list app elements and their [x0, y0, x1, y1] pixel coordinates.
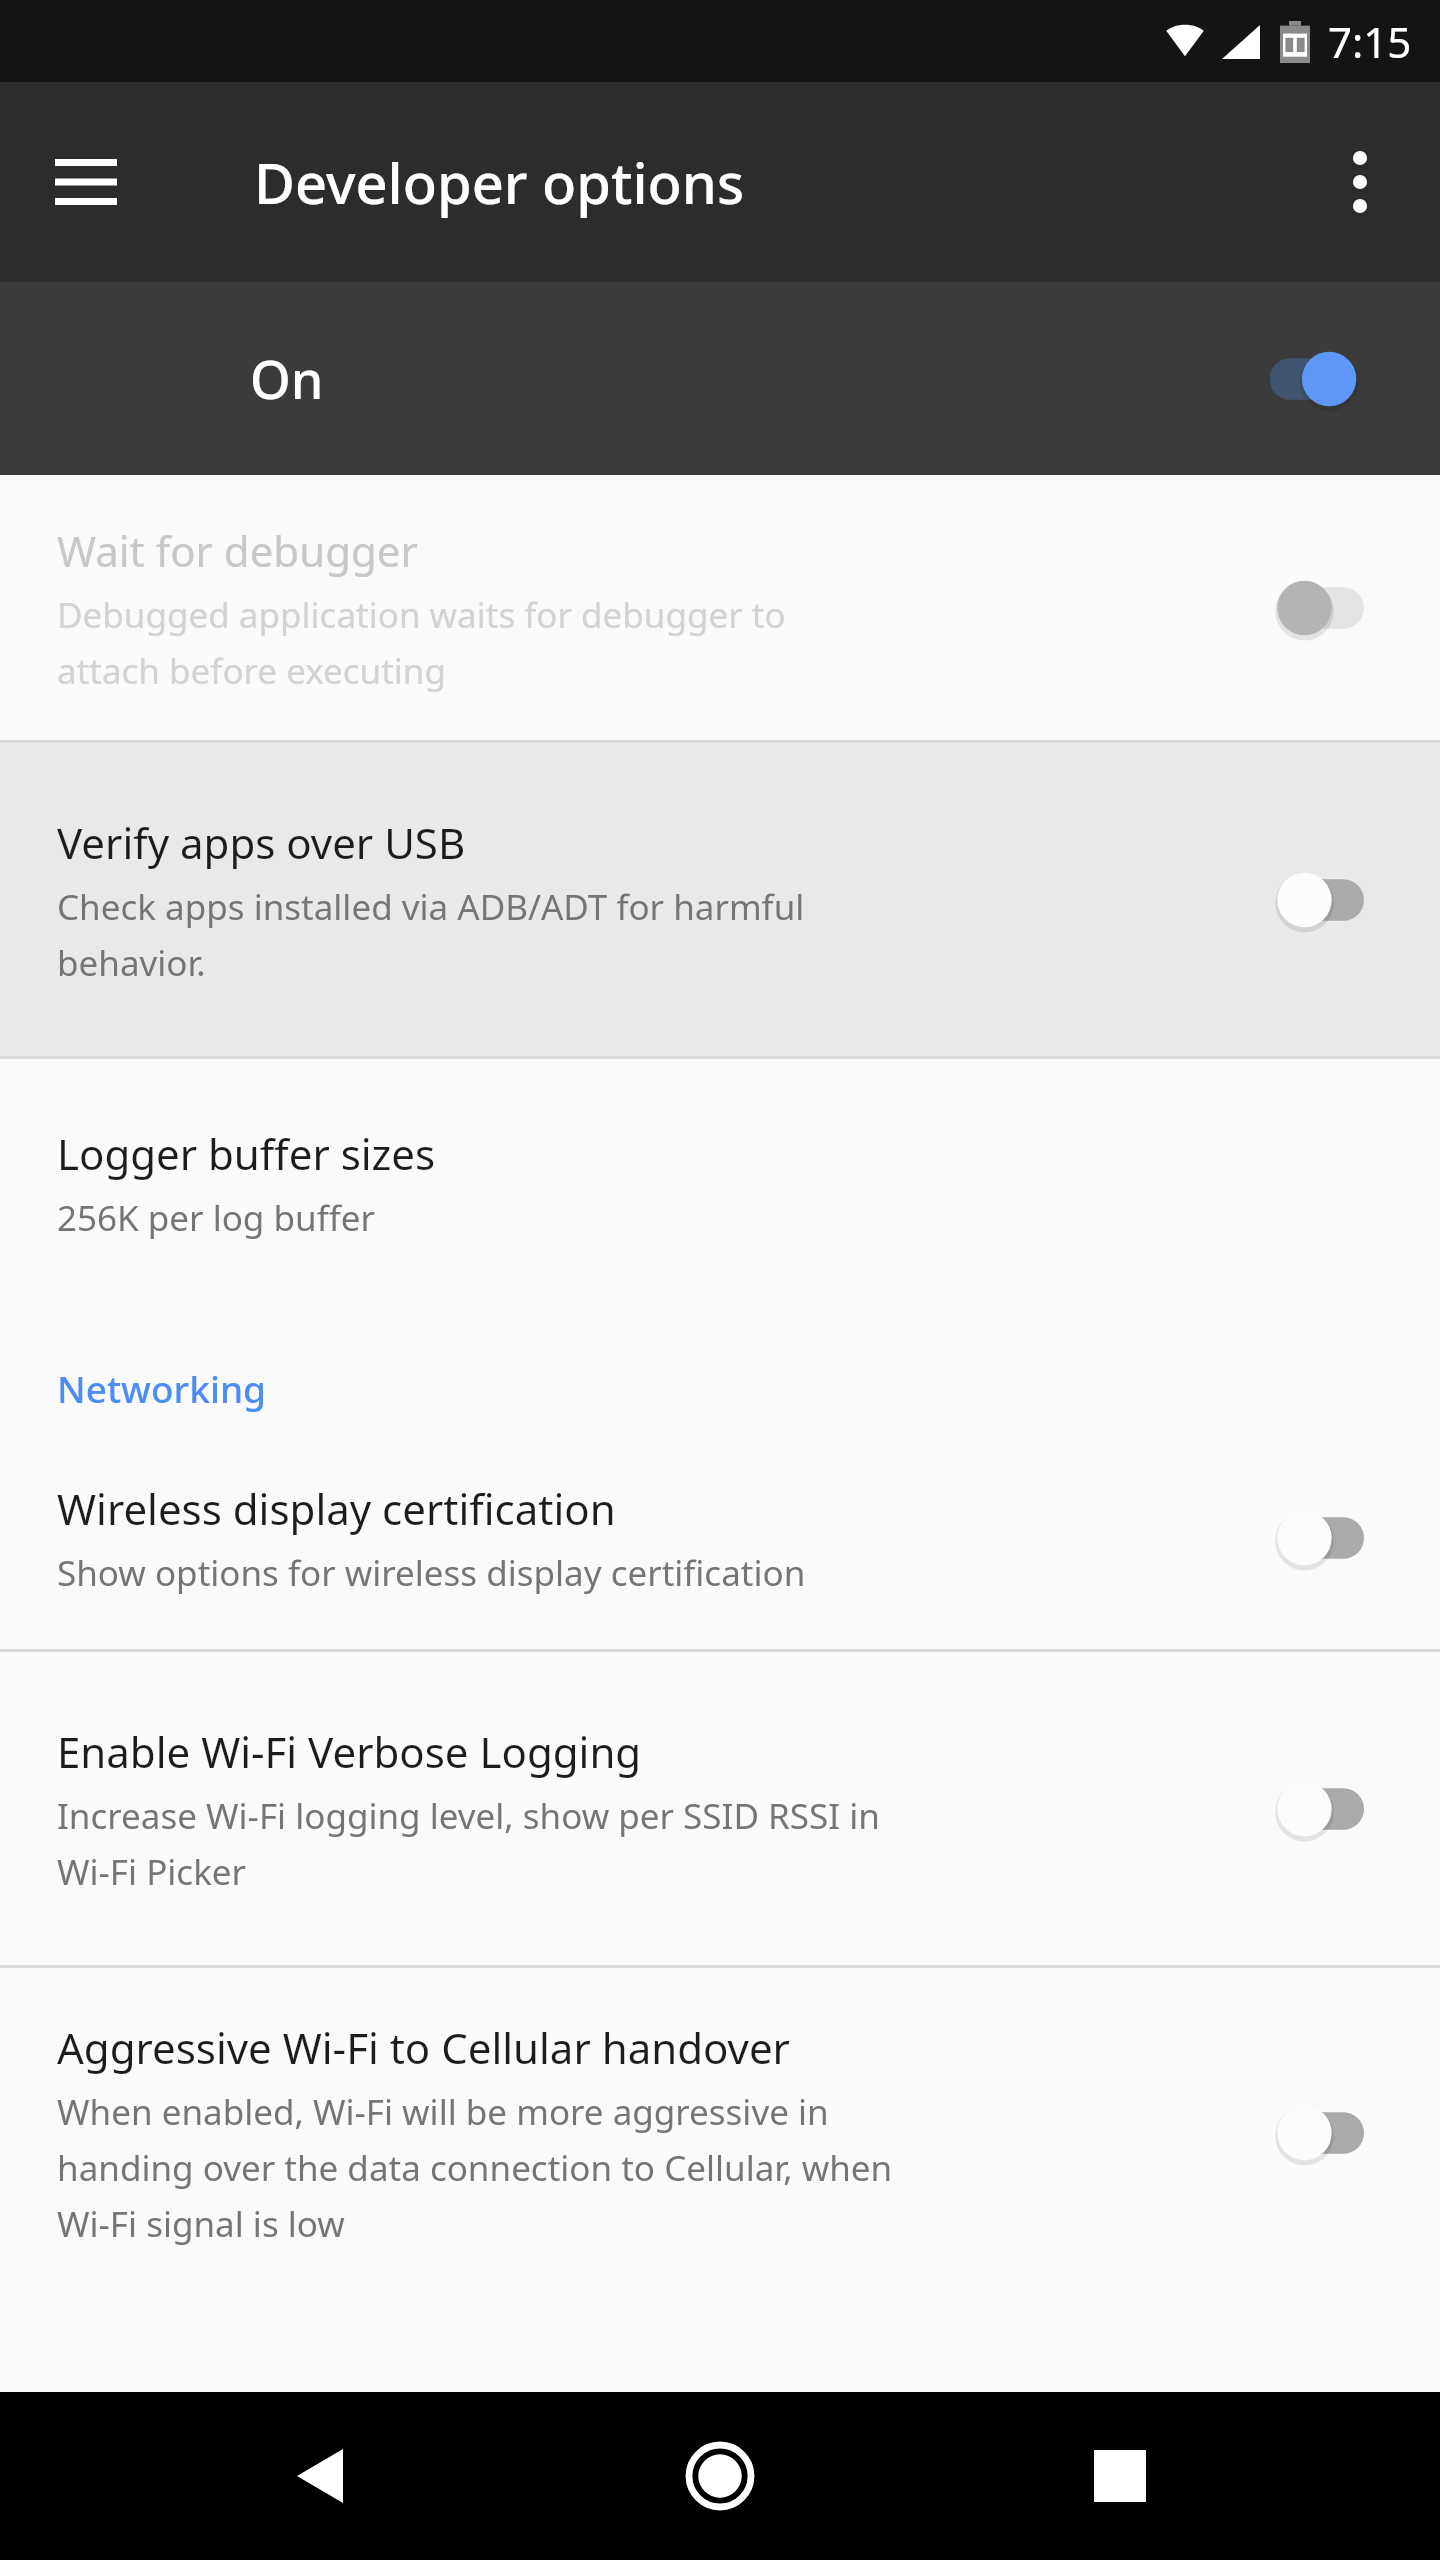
- staticText: Show options for wireless display certif…: [57, 1549, 806, 1597]
- staticText: On: [250, 343, 324, 414]
- staticText: Logger buffer sizes: [57, 1125, 436, 1182]
- button[interactable]: Wireless display certification: [0, 1427, 1440, 1649]
- button[interactable]: Verify apps over USB: [0, 743, 1440, 1056]
- button[interactable]: Aggressive Wi-Fi to Cellular handover: [0, 1968, 1440, 2298]
- button[interactable]: Open navigation menu: [36, 132, 136, 232]
- button[interactable]: Wait for debugger: [0, 475, 1440, 740]
- staticText: Verify apps over USB: [57, 814, 466, 871]
- staticText: Increase Wi-Fi logging level, show per S…: [57, 1792, 880, 1895]
- button[interactable]: Recent apps: [1040, 2396, 1200, 2556]
- staticText: Networking: [57, 1363, 267, 1413]
- button[interactable]: Back: [240, 2396, 400, 2556]
- button[interactable]: Logger buffer sizes: [0, 1059, 1440, 1307]
- staticText: Wait for debugger: [57, 522, 418, 579]
- button[interactable]: Enable Wi-Fi Verbose Logging: [0, 1652, 1440, 1965]
- button[interactable]: Home: [640, 2396, 800, 2556]
- staticText: Developer options: [254, 144, 745, 220]
- staticText: 256K per log buffer: [57, 1194, 375, 1242]
- staticText: When enabled, Wi-Fi will be more aggress…: [57, 2088, 893, 2247]
- staticText: Wireless display certification: [57, 1480, 616, 1537]
- staticText: Debugged application waits for debugger …: [57, 591, 786, 694]
- staticText: Check apps installed via ADB/ADT for har…: [57, 883, 805, 986]
- button[interactable]: More options: [1310, 132, 1410, 232]
- button[interactable]: On: [0, 282, 1440, 475]
- staticText: Aggressive Wi-Fi to Cellular handover: [57, 2019, 790, 2076]
- staticText: Enable Wi-Fi Verbose Logging: [57, 1723, 642, 1780]
- staticText: 7:15: [1328, 13, 1412, 70]
